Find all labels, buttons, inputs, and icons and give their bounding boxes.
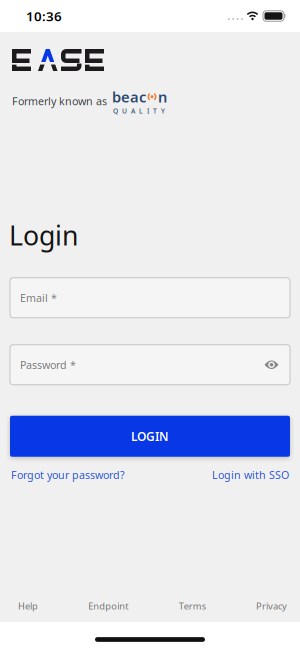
- staticText: Email *: [20, 291, 57, 305]
- button[interactable]: Password: [10, 345, 290, 385]
- staticText: Terms: [179, 600, 206, 612]
- staticText: LOGIN: [131, 428, 169, 444]
- staticText: Forgot your password?: [11, 468, 125, 482]
- staticText: Privacy: [256, 600, 287, 612]
- button[interactable]: Show password: [264, 360, 290, 370]
- staticText: Login with SSO: [212, 468, 289, 482]
- button[interactable]: Terms: [179, 600, 206, 612]
- button[interactable]: LOGIN: [10, 416, 290, 457]
- button[interactable]: Help: [18, 600, 38, 612]
- staticText: 10:36: [26, 7, 62, 25]
- staticText: beac: [112, 87, 146, 106]
- button[interactable]: Forgot your password?: [11, 468, 125, 482]
- button[interactable]: Login with SSO: [212, 468, 289, 482]
- button[interactable]: Privacy: [256, 600, 287, 612]
- staticText: Endpoint: [88, 600, 128, 612]
- button[interactable]: Endpoint: [88, 600, 128, 612]
- button[interactable]: Email: [10, 278, 290, 318]
- staticText: Password *: [20, 358, 76, 372]
- staticText: Formerly known as: [12, 94, 107, 108]
- staticText: Help: [18, 600, 38, 612]
- staticText: n: [158, 87, 167, 106]
- staticText: Login: [9, 217, 78, 253]
- staticText: Q U A L I T Y: [113, 106, 165, 115]
